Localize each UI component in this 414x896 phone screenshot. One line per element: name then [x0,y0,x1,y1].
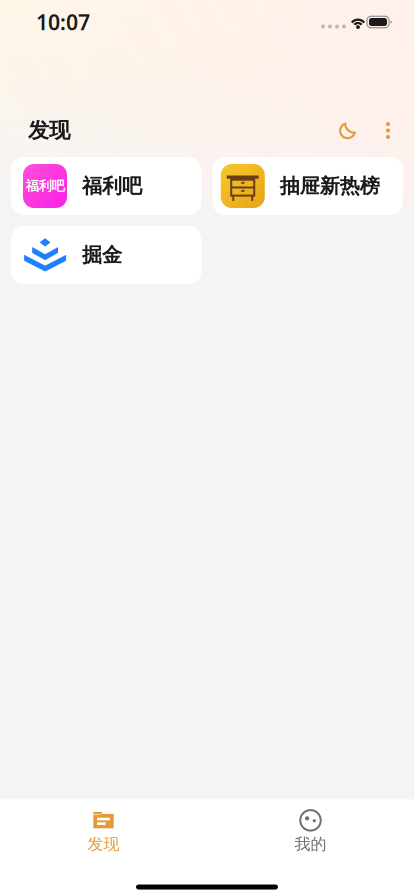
button[interactable]: Dark mode [326,106,370,155]
button[interactable]: 发现 [0,799,207,862]
staticText: 10:07 [36,8,90,36]
staticText: 掘金 [82,243,122,267]
staticText: 福利吧 [25,178,64,194]
button[interactable]: More options [370,106,406,155]
button[interactable]: 抽屉新热榜 [212,157,403,215]
button[interactable]: 福利吧 [11,157,201,215]
staticText: 抽屉新热榜 [280,174,380,198]
staticText: 我的 [294,834,326,854]
button[interactable]: 掘金 [11,226,201,284]
staticText: 发现 [87,834,119,854]
staticText: 发现 [28,117,70,144]
staticText: 福利吧 [82,174,142,198]
button[interactable]: 我的 [207,799,414,862]
